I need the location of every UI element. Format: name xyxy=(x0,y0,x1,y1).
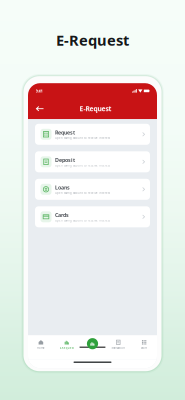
button[interactable]: More xyxy=(131,335,157,359)
button[interactable]: Transaction xyxy=(105,335,131,359)
staticText: Loans xyxy=(55,184,70,191)
button[interactable]: Request xyxy=(35,124,150,145)
button[interactable]: E-Request xyxy=(54,335,80,359)
button[interactable]: Deposit xyxy=(35,151,150,172)
button[interactable]: New request xyxy=(86,337,99,350)
button[interactable]: Home xyxy=(28,335,54,359)
staticText: E-Request xyxy=(56,30,129,50)
staticText: More xyxy=(141,346,148,350)
button[interactable]: Cards xyxy=(35,206,150,227)
staticText: Cards xyxy=(55,211,69,218)
staticText: Request xyxy=(55,129,75,136)
button[interactable]: Loans xyxy=(35,179,150,200)
staticText: Open saving account to receive interest xyxy=(55,219,110,222)
staticText: Open saving account to receive interest xyxy=(55,136,110,140)
staticText: Home xyxy=(37,346,45,350)
staticText: Deposit xyxy=(55,156,75,163)
staticText: Open saving account to receive interest xyxy=(55,191,110,195)
staticText: 9:41 xyxy=(35,88,42,93)
staticText: Transaction xyxy=(111,346,125,350)
staticText: E-Request xyxy=(79,104,111,113)
button[interactable]: Back xyxy=(34,103,45,114)
staticText: E-Request xyxy=(60,346,74,350)
staticText: Open saving account to receive interest xyxy=(55,164,110,167)
